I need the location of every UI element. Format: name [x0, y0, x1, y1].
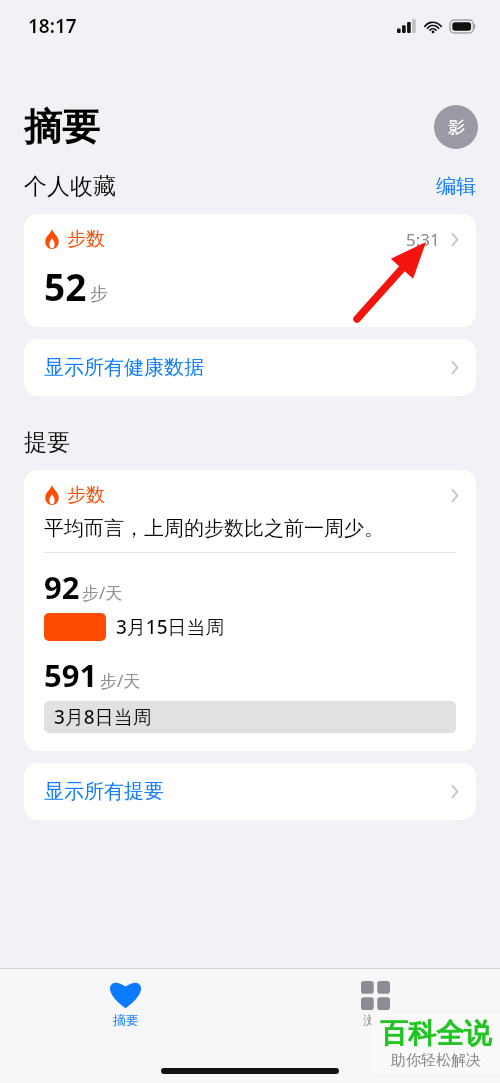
staticText: 助你轻松解决 — [391, 1051, 481, 1070]
button[interactable]: 个人资料 — [434, 105, 478, 149]
staticText: 步/天 — [82, 581, 123, 604]
staticText: 步数 — [67, 227, 105, 251]
staticText: 52 — [44, 261, 87, 311]
button[interactable]: 步数 — [24, 214, 476, 327]
button[interactable]: 编辑 — [412, 170, 500, 202]
staticText: 百科全说 — [380, 1016, 492, 1051]
staticText: 显示所有提要 — [44, 779, 164, 804]
staticText: 591 — [44, 654, 98, 696]
staticText: 提要 — [24, 428, 70, 457]
staticText: 摘要 — [113, 1012, 139, 1028]
staticText: 摘要 — [24, 103, 100, 151]
staticText: 浏览 — [363, 1012, 389, 1028]
staticText: 显示所有健康数据 — [44, 355, 204, 380]
staticText: 影 — [448, 117, 465, 138]
button[interactable]: 显示所有提要 — [24, 763, 476, 820]
button[interactable]: 步数 — [24, 470, 476, 751]
staticText: 步 — [90, 283, 108, 306]
staticText: 5:31 — [406, 228, 440, 251]
staticText: 个人收藏 — [24, 172, 116, 201]
staticText: 18:17 — [28, 13, 77, 39]
staticText: 平均而言，上周的步数比之前一周少。 — [44, 516, 384, 541]
staticText: 92 — [44, 566, 80, 608]
staticText: 3月8日当周 — [54, 704, 152, 730]
button[interactable]: 摘要 — [86, 977, 165, 1032]
staticText: 步/天 — [100, 669, 141, 692]
button[interactable]: 浏览 — [337, 977, 414, 1032]
staticText: 3月15日当周 — [116, 614, 225, 640]
staticText: 编辑 — [436, 174, 476, 198]
button[interactable]: 显示所有健康数据 — [24, 339, 476, 396]
staticText: 步数 — [67, 483, 105, 507]
